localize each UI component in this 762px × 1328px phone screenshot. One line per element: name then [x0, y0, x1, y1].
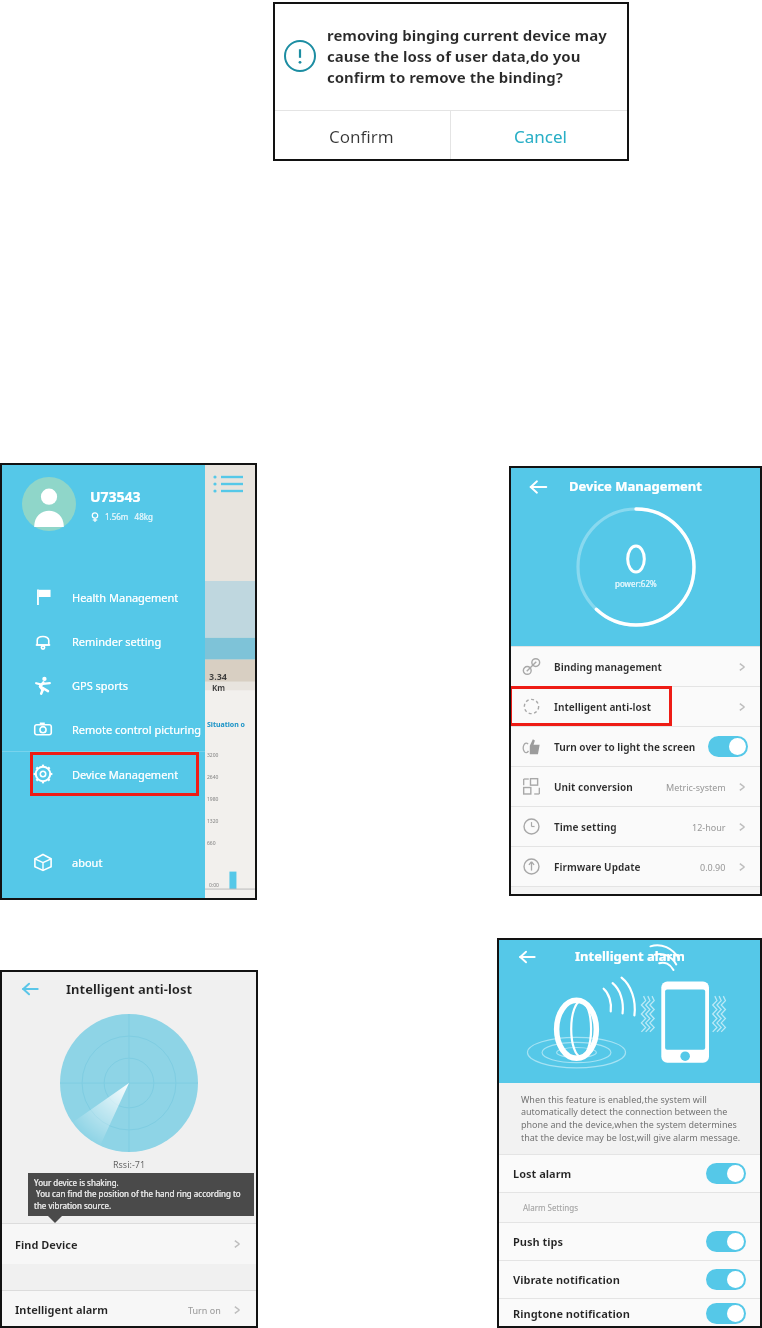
button[interactable]: Back [515, 945, 539, 969]
staticText: U73543 [90, 487, 141, 506]
staticText: Firmware Update [554, 860, 641, 874]
staticText: 3200 [207, 752, 219, 759]
staticText: Turn over to light the screen [554, 740, 696, 754]
button[interactable]: Push tips [497, 1223, 762, 1260]
staticText: Vibrate notification [513, 1272, 620, 1287]
button[interactable]: Cancel [451, 111, 629, 161]
staticText: Device Management [72, 767, 179, 782]
staticText: 0.0.90 [700, 861, 726, 873]
staticText: Cancel [514, 125, 567, 148]
button[interactable]: Toggle [708, 736, 748, 757]
staticText: Alarm Settings [523, 1202, 578, 1213]
button[interactable]: Back [525, 474, 551, 500]
button[interactable]: Binding management [509, 647, 762, 686]
staticText: Turn on [188, 1304, 221, 1316]
button[interactable]: Lost alarm [497, 1155, 762, 1192]
staticText: Rssi:-71 [0, 1158, 258, 1170]
staticText: Situation o [207, 720, 245, 730]
button[interactable]: Reminder setting [0, 619, 205, 663]
staticText: power:62% [615, 578, 657, 589]
staticText: 1320 [207, 818, 219, 825]
staticText: Intelligent anti-lost [66, 980, 193, 998]
button[interactable]: Toggle [706, 1269, 746, 1290]
staticText: 3.34 [209, 670, 227, 682]
button[interactable]: Firmware Update [509, 847, 762, 886]
staticText: Ringtone notification [513, 1306, 630, 1321]
staticText: Confirm [329, 125, 394, 148]
button[interactable]: Toggle [706, 1163, 746, 1184]
button[interactable]: Find Device [0, 1224, 258, 1264]
button[interactable]: Health Management [0, 575, 205, 619]
staticText: Km [212, 682, 226, 693]
staticText: Intelligent anti-lost [554, 700, 651, 714]
staticText: When this feature is enabled,the system … [521, 1093, 750, 1144]
button[interactable]: GPS sports [0, 663, 205, 707]
staticText: 2640 [207, 774, 219, 781]
staticText: 1980 [207, 796, 219, 803]
staticText: 660 [207, 840, 216, 847]
staticText: Reminder setting [72, 634, 162, 649]
button[interactable]: Remote control picturing [0, 707, 205, 751]
staticText: Device Management [569, 477, 702, 495]
staticText: Intelligent alarm [575, 947, 685, 965]
button[interactable]: Device Management [0, 752, 205, 796]
staticText: Your device is shaking. You can find the… [34, 1177, 248, 1212]
button[interactable]: Unit conversion [509, 767, 762, 806]
staticText: 12-hour [692, 821, 726, 833]
button[interactable]: Intelligent anti-lost [509, 687, 762, 726]
staticText: removing binging current device may caus… [327, 25, 617, 88]
staticText: Metric-system [666, 781, 726, 793]
staticText: Push tips [513, 1234, 564, 1249]
button[interactable]: Alarm Settings [497, 1193, 762, 1222]
button[interactable]: Toggle [706, 1231, 746, 1252]
staticText: Remote control picturing [72, 722, 201, 737]
staticText: Unit conversion [554, 780, 633, 794]
button[interactable]: Intelligent alarm [0, 1291, 258, 1328]
staticText: GPS sports [72, 678, 129, 693]
button[interactable]: Ringtone notification [497, 1299, 762, 1328]
staticText: Intelligent alarm [15, 1302, 109, 1317]
staticText: Lost alarm [513, 1166, 572, 1181]
button[interactable]: Time setting [509, 807, 762, 846]
button[interactable]: Toggle [706, 1303, 746, 1324]
staticText: Binding management [554, 660, 662, 674]
button[interactable]: Back [18, 977, 42, 1001]
button[interactable]: about [0, 840, 205, 884]
staticText: Health Management [72, 590, 179, 605]
staticText: Time setting [554, 820, 617, 834]
button[interactable]: Vibrate notification [497, 1261, 762, 1298]
staticText: 0:00 [209, 882, 219, 889]
staticText: 1.56m 48kg [105, 511, 153, 522]
button[interactable]: Confirm [273, 111, 450, 161]
staticText: about [72, 855, 103, 870]
button[interactable]: Turn over to light the screen [509, 727, 762, 766]
staticText: Find Device [15, 1237, 78, 1252]
